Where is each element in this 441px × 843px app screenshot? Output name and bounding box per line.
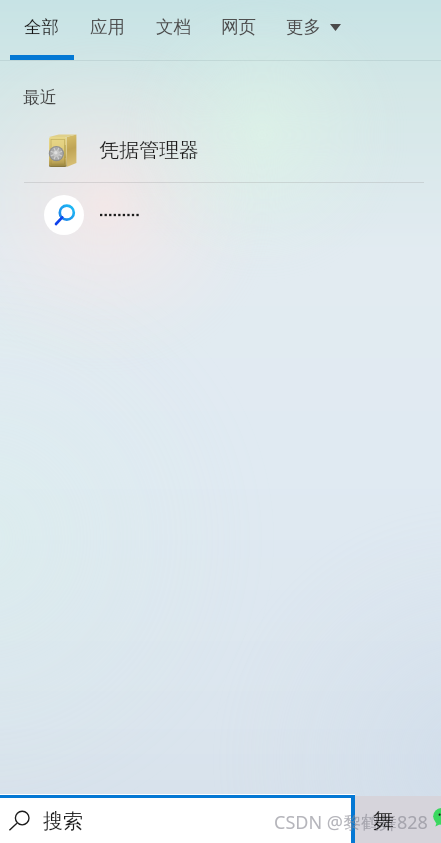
staticText: 凭据管理器 [99, 138, 199, 163]
button[interactable] [0, 794, 355, 843]
staticText: 最近 [23, 87, 57, 108]
other: WeChat [432, 808, 441, 827]
staticText: 应用 [90, 16, 125, 38]
staticText: 舞 [373, 808, 394, 834]
button[interactable]: 全部 [10, 0, 72, 54]
staticText: CSDN @黎鹤舞828 [274, 810, 428, 835]
staticText: 搜索 [43, 809, 83, 834]
staticText: 更多 [286, 16, 321, 38]
button[interactable] [0, 189, 441, 241]
staticText: 文档 [156, 16, 191, 38]
other: Search [9, 810, 29, 830]
button[interactable]: 网页 [207, 0, 269, 54]
staticText: 全部 [24, 16, 59, 38]
button[interactable]: 凭据管理器 [0, 121, 441, 182]
button[interactable]: 文档 [142, 0, 204, 54]
button[interactable]: 应用 [76, 0, 138, 54]
staticText: 网页 [221, 16, 256, 38]
button[interactable]: 更多 [278, 0, 349, 54]
